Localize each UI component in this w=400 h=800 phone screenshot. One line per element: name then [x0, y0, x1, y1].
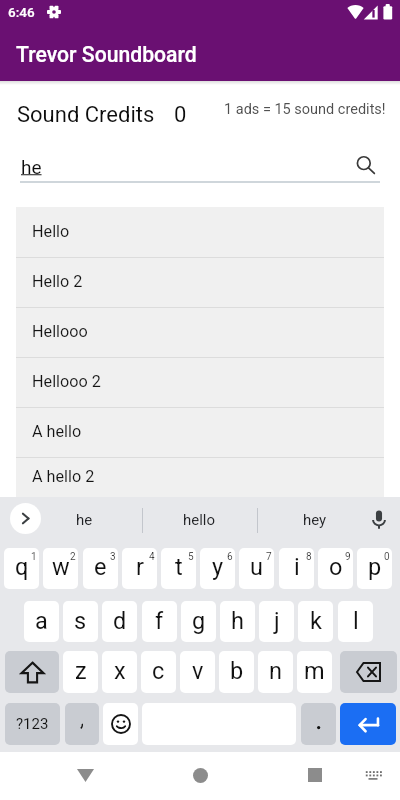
- button[interactable]: ?123: [5, 703, 60, 745]
- staticText: 9: [345, 551, 351, 563]
- staticText: a: [35, 607, 48, 635]
- staticText: q: [15, 553, 29, 581]
- staticText: e: [94, 553, 107, 581]
- staticText: k: [310, 607, 322, 635]
- staticText: h: [231, 607, 244, 635]
- button[interactable]: v: [180, 651, 215, 693]
- staticText: hey: [303, 511, 327, 529]
- staticText: u: [250, 553, 263, 581]
- button[interactable]: i: [279, 548, 314, 589]
- button[interactable]: l: [338, 601, 373, 642]
- button[interactable]: Home: [180, 755, 220, 795]
- button[interactable]: Voice input: [365, 505, 393, 533]
- button[interactable]: b: [219, 651, 254, 693]
- button[interactable]: p: [357, 548, 392, 589]
- staticText: 6: [227, 551, 233, 563]
- staticText: 1: [31, 551, 37, 563]
- staticText: Hellooo 2: [32, 372, 101, 391]
- button[interactable]: u: [239, 548, 274, 589]
- button[interactable]: Enter: [340, 703, 396, 745]
- button[interactable]: [301, 703, 336, 745]
- button[interactable]: Change keyboard: [358, 760, 388, 790]
- button[interactable]: Back: [65, 755, 105, 795]
- staticText: 6:46: [8, 4, 35, 20]
- staticText: 1 ads = 15 sound credits!: [224, 101, 386, 118]
- staticText: j: [274, 607, 280, 635]
- button[interactable]: Recent apps: [295, 755, 335, 795]
- button[interactable]: e: [83, 548, 118, 589]
- staticText: s: [74, 607, 87, 635]
- button[interactable]: g: [181, 601, 216, 642]
- staticText: A hello: [32, 422, 82, 441]
- button[interactable]: w: [43, 548, 78, 589]
- staticText: w: [52, 553, 70, 581]
- staticText: 4: [149, 551, 155, 563]
- button[interactable]: m: [297, 651, 332, 693]
- button[interactable]: Hello: [16, 207, 384, 257]
- button[interactable]: s: [63, 601, 98, 642]
- button[interactable]: Hellooo: [16, 308, 384, 357]
- button[interactable]: Emoji: [103, 703, 138, 745]
- staticText: g: [192, 607, 206, 635]
- button[interactable]: k: [298, 601, 333, 642]
- staticText: ?123: [16, 715, 49, 733]
- staticText: Hellooo: [32, 322, 88, 341]
- button[interactable]: Shift: [5, 651, 59, 693]
- button[interactable]: [65, 703, 99, 745]
- staticText: 7: [266, 551, 272, 563]
- button[interactable]: y: [200, 548, 235, 589]
- staticText: Sound Credits: [17, 102, 155, 128]
- staticText: o: [329, 553, 343, 581]
- staticText: Trevor Soundboard: [16, 42, 197, 67]
- button[interactable]: q: [4, 548, 39, 589]
- staticText: b: [230, 657, 244, 685]
- staticText: y: [212, 553, 224, 581]
- button[interactable]: z: [63, 651, 98, 693]
- staticText: f: [155, 607, 164, 635]
- button[interactable]: a: [24, 601, 59, 642]
- button[interactable]: t: [161, 548, 196, 589]
- staticText: r: [136, 553, 144, 581]
- button[interactable]: d: [102, 601, 137, 642]
- staticText: 5: [188, 551, 194, 563]
- staticText: n: [269, 657, 282, 685]
- button[interactable]: A hello 2: [16, 458, 384, 497]
- staticText: d: [113, 607, 127, 635]
- button[interactable]: c: [141, 651, 176, 693]
- staticText: A hello 2: [32, 467, 95, 486]
- button[interactable]: f: [142, 601, 177, 642]
- staticText: he: [21, 156, 42, 178]
- button[interactable]: n: [258, 651, 293, 693]
- button[interactable]: Backspace: [340, 651, 397, 693]
- staticText: 3: [110, 551, 116, 563]
- button[interactable]: A hello: [16, 408, 384, 457]
- staticText: c: [152, 657, 165, 685]
- staticText: p: [368, 553, 382, 581]
- staticText: x: [114, 657, 126, 685]
- staticText: z: [75, 657, 87, 685]
- staticText: 0: [384, 551, 390, 563]
- button[interactable]: Search: [355, 155, 377, 177]
- button[interactable]: he: [26, 497, 142, 543]
- staticText: Hello 2: [32, 272, 83, 291]
- staticText: 0: [174, 102, 187, 128]
- staticText: 2: [70, 551, 76, 563]
- staticText: v: [192, 657, 204, 685]
- staticText: m: [304, 657, 325, 685]
- button[interactable]: Hello 2: [16, 258, 384, 307]
- button[interactable]: hey: [257, 497, 372, 543]
- staticText: t: [175, 553, 183, 581]
- button[interactable]: o: [318, 548, 353, 589]
- staticText: Hello: [32, 222, 70, 241]
- button[interactable]: Hellooo 2: [16, 358, 384, 407]
- button[interactable]: hello: [142, 497, 257, 543]
- staticText: i: [294, 553, 300, 581]
- button[interactable]: h: [220, 601, 255, 642]
- button[interactable]: More suggestions: [10, 503, 41, 534]
- button[interactable]: r: [122, 548, 157, 589]
- staticText: he: [76, 511, 93, 529]
- button[interactable]: j: [259, 601, 294, 642]
- staticText: 8: [306, 551, 312, 563]
- button[interactable]: x: [102, 651, 137, 693]
